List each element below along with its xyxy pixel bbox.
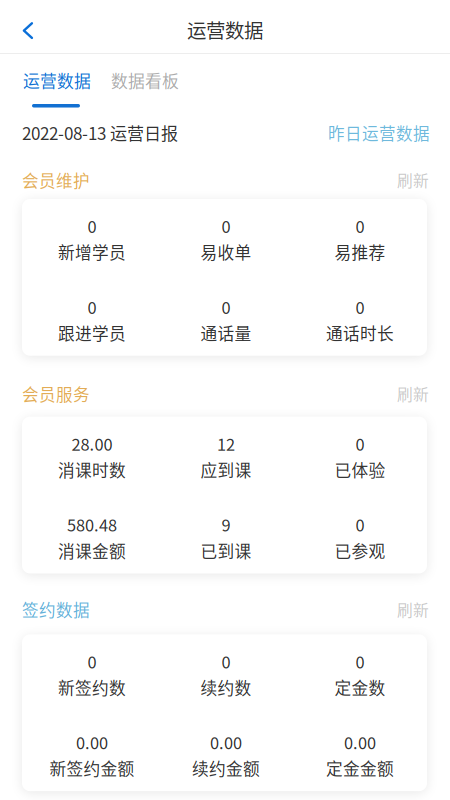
staticText: 9 <box>221 513 230 536</box>
staticText: 昨日运营数据 <box>328 121 430 145</box>
staticText: 0 <box>87 649 96 673</box>
staticText: 签约数据 <box>22 597 90 621</box>
staticText: 0 <box>355 513 364 536</box>
staticText: 消课时数 <box>58 457 126 481</box>
staticText: 运营数据 <box>187 15 263 44</box>
staticText: 28.00 <box>71 432 112 455</box>
staticText: 2022-08-13 运营日报 <box>22 120 178 145</box>
staticText: 0 <box>87 295 96 319</box>
staticText: 跟进学员 <box>58 321 126 345</box>
staticText: 应到课 <box>200 457 251 481</box>
button[interactable]: 返回 <box>0 11 56 49</box>
button[interactable]: 刷新 <box>397 598 429 621</box>
staticText: 消课金额 <box>58 538 126 562</box>
staticText: 0 <box>221 214 230 238</box>
staticText: 刷新 <box>397 382 429 405</box>
staticText: 新增学员 <box>58 240 126 264</box>
button[interactable]: 昨日运营数据 <box>328 121 430 145</box>
staticText: 0 <box>221 295 230 319</box>
button[interactable]: 刷新 <box>397 382 429 405</box>
staticText: 0.00 <box>210 730 242 754</box>
staticText: 定金金额 <box>326 756 394 780</box>
button[interactable]: 刷新 <box>397 169 429 191</box>
staticText: 0.00 <box>344 730 376 754</box>
staticText: 580.48 <box>67 513 117 536</box>
staticText: 数据看板 <box>111 68 179 92</box>
staticText: 刷新 <box>397 598 429 621</box>
staticText: 通话时长 <box>326 321 394 345</box>
staticText: 会员维护 <box>22 168 90 192</box>
staticText: 0.00 <box>76 730 108 754</box>
staticText: 新签约数 <box>58 675 126 699</box>
staticText: 刷新 <box>397 169 429 191</box>
staticText: 0 <box>355 214 364 238</box>
staticText: 0 <box>355 432 364 455</box>
staticText: 易推荐 <box>334 240 385 264</box>
staticText: 12 <box>217 432 235 455</box>
staticText: 已体验 <box>334 457 385 481</box>
staticText: 新签约金额 <box>49 756 134 780</box>
staticText: 通话量 <box>200 321 251 345</box>
staticText: 定金数 <box>334 675 385 699</box>
staticText: 0 <box>355 295 364 319</box>
staticText: 已参观 <box>334 538 385 562</box>
staticText: 0 <box>87 214 96 238</box>
staticText: 运营数据 <box>23 68 91 92</box>
staticText: 易收单 <box>200 240 251 264</box>
staticText: 0 <box>355 649 364 673</box>
staticText: 会员服务 <box>22 382 90 406</box>
staticText: 续约数 <box>200 675 251 699</box>
staticText: 续约金额 <box>192 756 260 780</box>
button[interactable]: 数据看板 <box>111 54 179 116</box>
staticText: 已到课 <box>200 538 251 562</box>
staticText: 0 <box>221 649 230 673</box>
button[interactable]: 运营数据 <box>23 54 91 116</box>
